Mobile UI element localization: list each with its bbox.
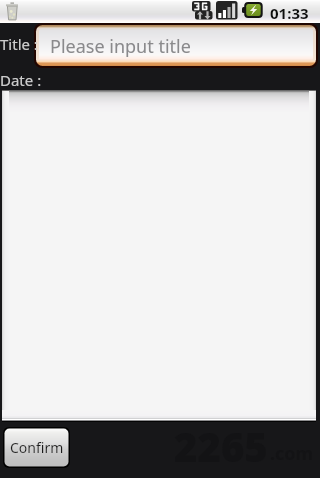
staticText: Date :: [0, 70, 42, 90]
staticText: 01:33: [270, 3, 309, 23]
staticText: Confirm: [10, 438, 64, 457]
button[interactable]: Confirm: [3, 427, 70, 468]
staticText: 2265: [174, 419, 268, 473]
button[interactable]: [2, 90, 316, 422]
button[interactable]: Notification: [2, 1, 22, 22]
staticText: Title :: [0, 34, 38, 54]
button[interactable]: Please input title: [33, 22, 319, 69]
staticText: Please input title: [50, 34, 191, 59]
